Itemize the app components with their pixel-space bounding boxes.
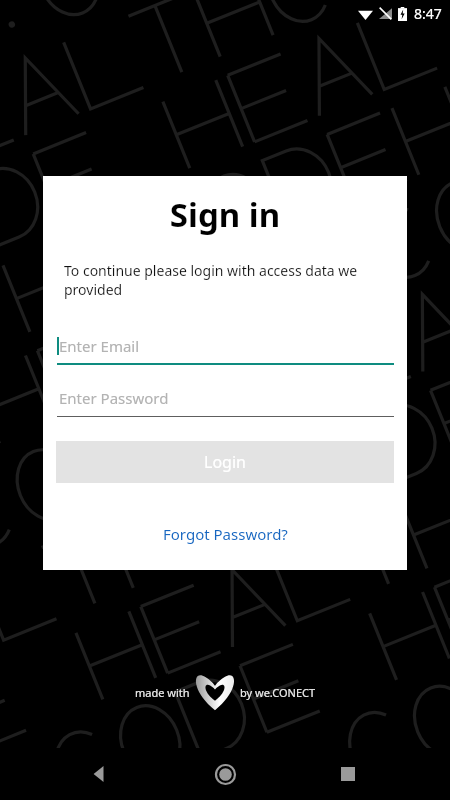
staticText: Sign in: [43, 192, 407, 237]
staticText: made with: [135, 685, 190, 700]
button[interactable]: Enter Email: [57, 327, 394, 365]
staticText: 8:47: [414, 4, 442, 23]
button[interactable]: Home: [203, 752, 247, 796]
button[interactable]: Back: [78, 752, 122, 796]
staticText: Forgot Password?: [163, 524, 288, 544]
staticText: Enter Email: [59, 336, 140, 356]
button[interactable]: Recent apps: [326, 752, 370, 796]
staticText: To continue please login with access dat…: [64, 261, 383, 299]
staticText: by we.CONECT: [240, 685, 316, 700]
button[interactable]: Enter Password: [57, 379, 394, 417]
staticText: Login: [204, 451, 246, 473]
button[interactable]: Forgot Password?: [43, 519, 407, 549]
staticText: Enter Password: [59, 388, 169, 408]
